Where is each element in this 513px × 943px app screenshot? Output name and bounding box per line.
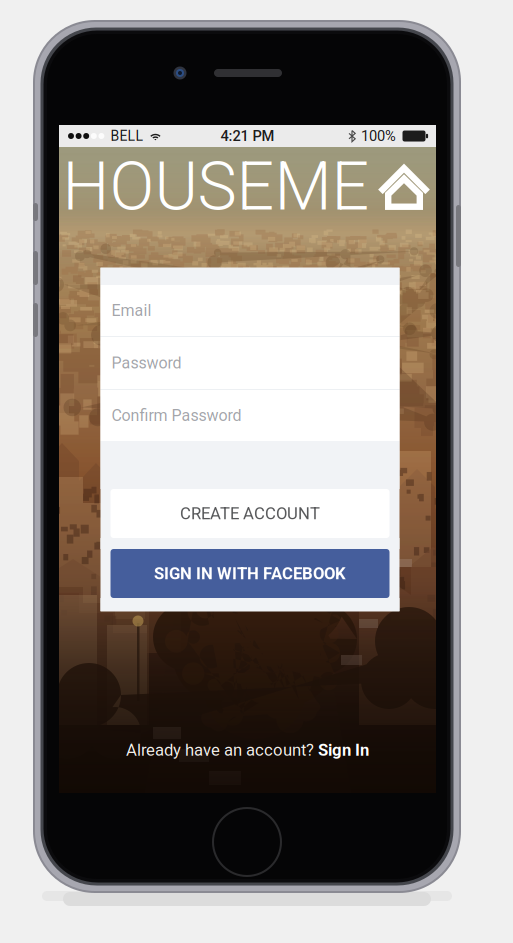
staticText: BELL <box>110 128 143 144</box>
button[interactable]: Email <box>100 285 399 336</box>
button[interactable]: Already have an account? <box>118 735 377 765</box>
staticText: Sign In <box>318 740 369 760</box>
staticText: HOUSEME <box>62 148 369 226</box>
staticText: 4:21 PM <box>220 127 274 145</box>
staticText: Already have an account? <box>126 740 318 760</box>
staticText: Password <box>111 354 181 372</box>
staticText: Confirm Password <box>111 406 241 425</box>
staticText: 100% <box>361 127 396 145</box>
button[interactable]: Confirm Password <box>100 390 399 441</box>
staticText: CREATE ACCOUNT <box>180 504 320 523</box>
button[interactable]: CREATE ACCOUNT <box>110 489 389 538</box>
staticText: Email <box>111 301 151 320</box>
button[interactable]: Password <box>100 337 399 389</box>
staticText: SIGN IN WITH FACEBOOK <box>154 564 346 583</box>
button[interactable]: SIGN IN WITH FACEBOOK <box>110 549 389 598</box>
